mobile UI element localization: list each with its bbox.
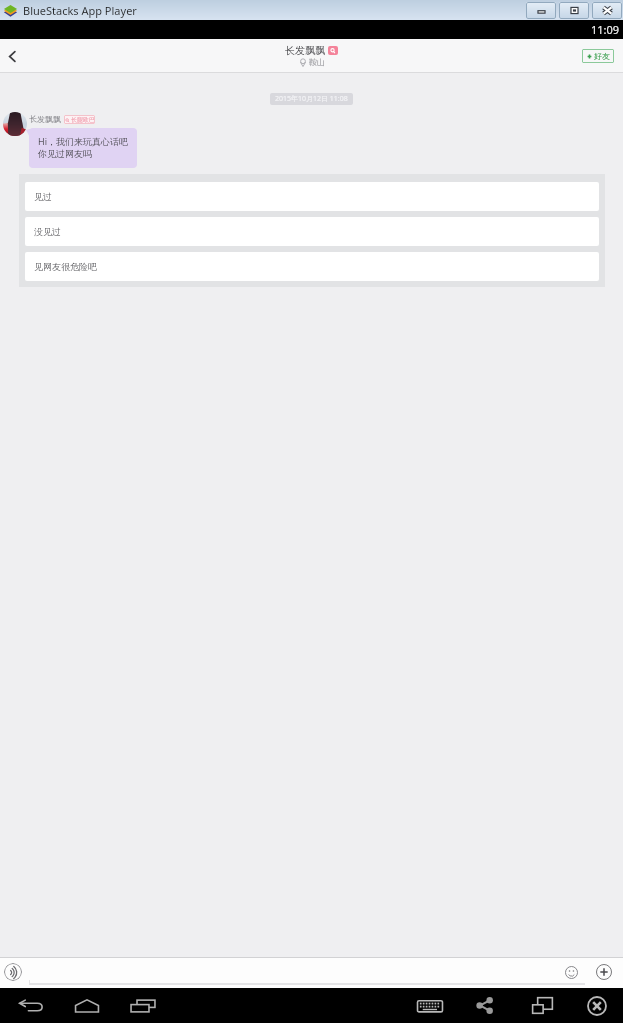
staticText: 好友 xyxy=(594,51,610,61)
button[interactable]: Avatar xyxy=(3,112,27,136)
staticText: 长发飘飘 xyxy=(29,114,61,124)
button[interactable]: Keyboard xyxy=(413,988,447,1023)
staticText: 11:09 xyxy=(591,22,620,37)
button[interactable]: Close xyxy=(580,988,614,1023)
staticText: BlueStacks App Player xyxy=(23,3,137,18)
button[interactable]: Recents xyxy=(126,988,160,1023)
button[interactable]: Back xyxy=(14,988,48,1023)
button[interactable]: Back xyxy=(0,44,24,68)
staticText: 见过 xyxy=(34,191,52,202)
button[interactable] xyxy=(29,962,559,984)
staticText: 2015年10月12日 11:08 xyxy=(275,94,348,104)
button[interactable]: Hi，我们来玩真心话吧 你见过网友吗 xyxy=(38,135,128,160)
staticText: 鞍山 xyxy=(309,57,325,67)
button[interactable]: 见过 xyxy=(25,182,599,211)
button[interactable]: Close xyxy=(592,2,622,19)
button[interactable]: Share xyxy=(468,988,502,1023)
button[interactable]: Maximize xyxy=(559,2,589,19)
staticText: 没见过 xyxy=(34,226,61,237)
button[interactable]: Minimize xyxy=(526,2,556,19)
button[interactable]: 见网友很危险吧 xyxy=(25,252,599,281)
staticText: 见网友很危险吧 xyxy=(34,261,97,272)
staticText: 长腿欧巴 xyxy=(71,116,95,124)
button[interactable]: Voice message xyxy=(4,963,22,981)
button[interactable]: More xyxy=(595,963,613,981)
button[interactable]: 好友 xyxy=(582,49,614,63)
button[interactable]: Emoji xyxy=(564,965,579,980)
staticText: 长发飘飘 xyxy=(285,44,325,57)
button[interactable]: 没见过 xyxy=(25,217,599,246)
staticText: Hi，我们来玩真心话吧 你见过网友吗 xyxy=(38,135,128,160)
button[interactable]: Home xyxy=(70,988,104,1023)
button[interactable]: Cast screen xyxy=(525,988,559,1023)
